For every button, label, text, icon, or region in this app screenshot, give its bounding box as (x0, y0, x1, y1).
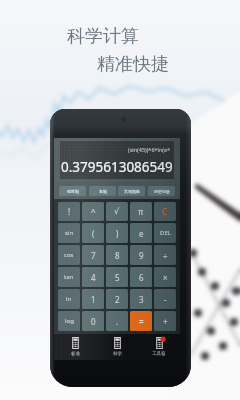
button[interactable]: sin (58, 223, 80, 243)
staticText: 7 (91, 250, 96, 261)
button[interactable]: + (154, 311, 176, 331)
staticText: 9 (139, 250, 144, 261)
staticText: 0 (91, 316, 96, 327)
button[interactable]: - (154, 289, 176, 309)
button[interactable]: 历史记录 (148, 186, 175, 196)
staticText: × (163, 272, 168, 283)
button[interactable]: . (106, 311, 128, 331)
staticText: ! (68, 206, 71, 217)
staticText: ln (66, 295, 72, 303)
button[interactable]: 科学 (96, 334, 138, 360)
button[interactable]: × (154, 267, 176, 287)
button[interactable]: 4 (82, 267, 104, 287)
staticText: 4 (91, 272, 96, 283)
staticText: (sin(45))*6*ln(e* (128, 146, 171, 153)
staticText: π (138, 206, 144, 217)
staticText: . (116, 316, 119, 327)
button[interactable]: 0 (82, 311, 104, 331)
button[interactable]: 7 (82, 245, 104, 265)
staticText: e (139, 228, 144, 239)
button[interactable]: 2 (106, 289, 128, 309)
button[interactable]: 大写转换 (118, 186, 145, 196)
staticText: = (139, 316, 144, 327)
button[interactable]: DEL (154, 223, 176, 243)
button[interactable]: 9 (130, 245, 152, 265)
staticText: 8 (115, 250, 120, 261)
staticText: ÷ (163, 250, 168, 261)
staticText: C (162, 206, 168, 217)
staticText: 5 (115, 272, 120, 283)
button[interactable]: ! (58, 202, 80, 221)
button[interactable]: 5 (106, 267, 128, 287)
staticText: 3 (139, 294, 144, 305)
staticText: 精准快捷 (97, 53, 169, 76)
button[interactable]: C (154, 202, 176, 221)
staticText: 弧度制 (67, 189, 79, 194)
button[interactable]: cos (58, 245, 80, 265)
button[interactable]: √ (106, 202, 128, 221)
button[interactable]: ln (58, 289, 80, 309)
button[interactable]: tan (58, 267, 80, 287)
staticText: ^ (91, 206, 96, 217)
staticText: log (65, 317, 74, 325)
staticText: - (164, 294, 167, 305)
button[interactable]: 1 (82, 289, 104, 309)
staticText: 科学 (113, 351, 122, 357)
staticText: DEL (160, 229, 171, 237)
button[interactable]: ÷ (154, 245, 176, 265)
staticText: 标准 (71, 351, 80, 357)
staticText: + (163, 316, 168, 327)
button[interactable]: ) (106, 223, 128, 243)
button[interactable]: 6 (130, 267, 152, 287)
button[interactable]: 标准 (54, 334, 96, 360)
button[interactable]: = (130, 311, 152, 331)
staticText: ) (116, 228, 119, 239)
button[interactable]: ( (82, 223, 104, 243)
button[interactable]: 3 (130, 289, 152, 309)
button[interactable]: 复制 (89, 186, 116, 196)
button[interactable]: ^ (82, 202, 104, 221)
staticText: 科学计算 (67, 25, 139, 48)
staticText: sin (65, 229, 74, 237)
staticText: 2 (115, 294, 120, 305)
button[interactable]: 工具箱 (138, 334, 180, 360)
staticText: 工具箱 (152, 351, 166, 357)
button[interactable]: log (58, 311, 80, 331)
staticText: 1 (91, 294, 96, 305)
button[interactable]: 弧度制 (59, 186, 86, 196)
staticText: 0.3795613086549 (61, 158, 173, 176)
button[interactable]: π (130, 202, 152, 221)
button[interactable]: 8 (106, 245, 128, 265)
staticText: 大写转换 (124, 189, 140, 194)
staticText: √ (114, 207, 120, 216)
button[interactable]: e (130, 223, 152, 243)
staticText: tan (64, 273, 74, 281)
staticText: 6 (139, 272, 144, 283)
staticText: 历史记录 (154, 189, 170, 194)
staticText: ( (92, 228, 95, 239)
staticText: 复制 (99, 189, 107, 194)
staticText: cos (64, 251, 74, 259)
